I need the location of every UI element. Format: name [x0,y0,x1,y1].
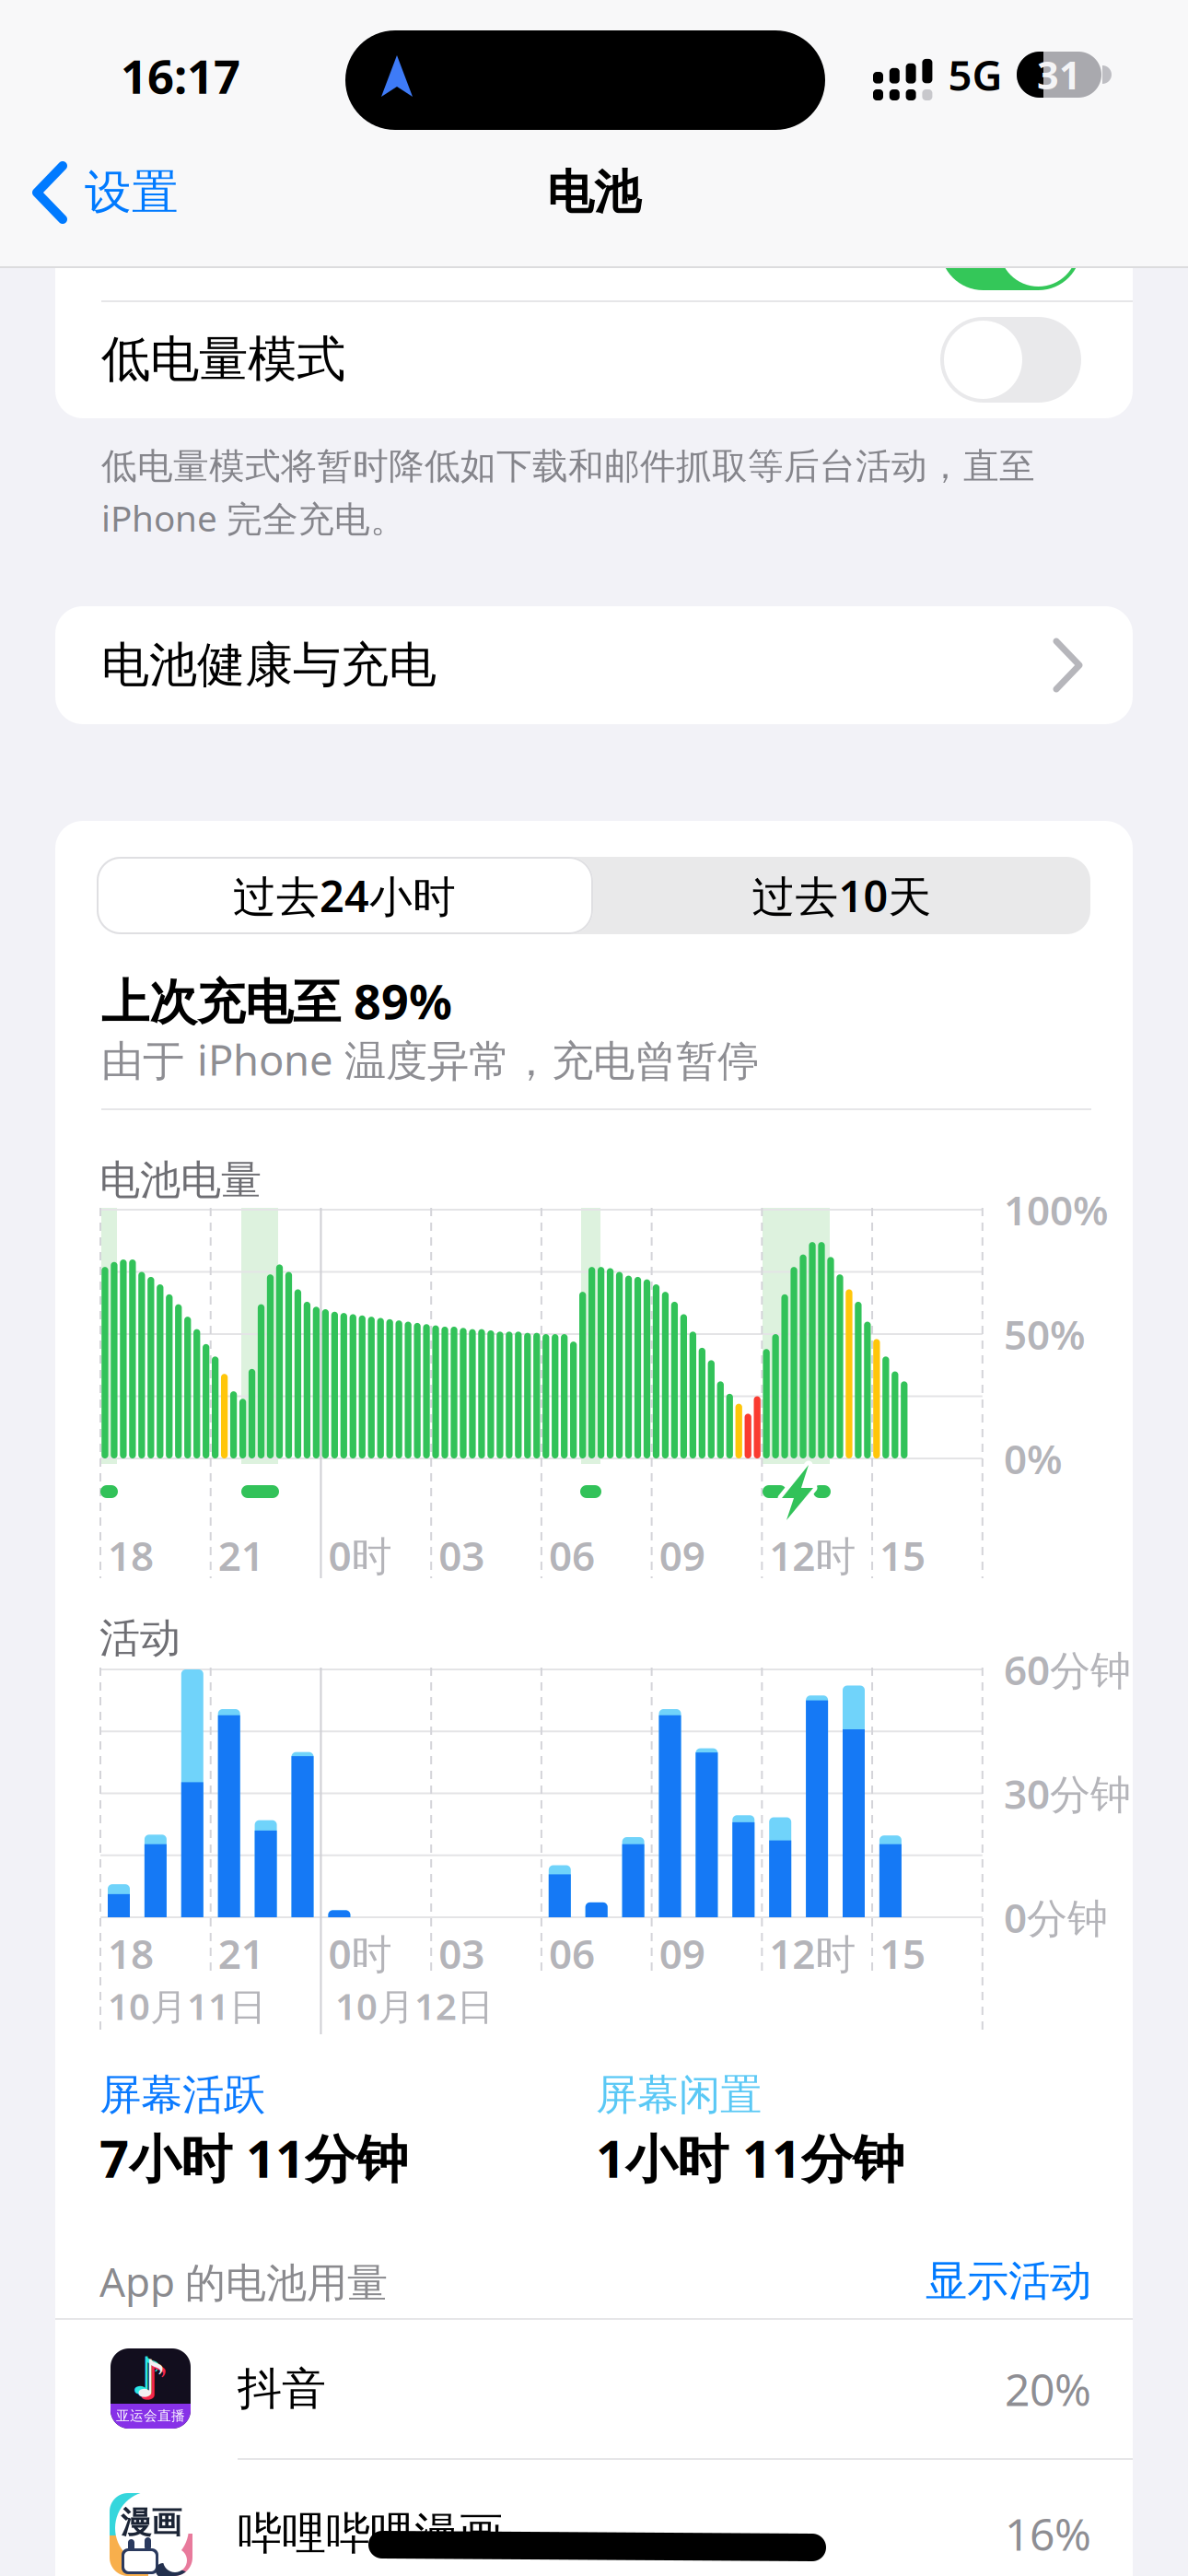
staticText: 60分钟 [1004,1643,1131,1696]
staticText: 21 [218,1926,264,1980]
staticText: ♪ [137,2352,170,2411]
staticText: 03 [439,1528,485,1582]
staticText: 06 [549,1528,595,1582]
staticText: iPhone 完全充电。 [101,494,406,541]
staticText: 16:17 [121,45,240,107]
staticText: 0时 [328,1528,392,1582]
button[interactable]: 显示活动 [0,0,460,68]
staticText: 抖音 [238,2362,326,2416]
staticText: 06 [549,1926,595,1980]
staticText: ♪ [130,2347,163,2405]
button[interactable]: 过去24小时 [97,857,593,934]
staticText: 5G [948,47,1002,102]
button[interactable]: 返回设置 [33,161,245,224]
staticText: 09 [659,1926,705,1980]
staticText: 0% [1004,1432,1063,1485]
button[interactable]: 过去10天 [593,857,1090,934]
staticText: 漫画 [121,2504,181,2541]
staticText: 屏幕活跃 [99,2069,265,2121]
staticText: 活动 [99,1613,181,1663]
staticText: 21 [218,1528,264,1582]
staticText: 09 [659,1528,705,1582]
staticText: 0分钟 [1004,1890,1108,1944]
staticText: 20% [1005,2360,1091,2418]
staticText: 1小时 11分钟 [596,2123,904,2192]
staticText: 屏幕闲置 [596,2069,762,2121]
staticText: 0时 [328,1926,392,1980]
staticText: 100% [1004,1183,1109,1237]
staticText: 电池健康与充电 [101,636,437,695]
staticText: 15 [880,1528,926,1582]
staticText: 上次充电至 89% [101,969,452,1032]
button[interactable]: 电池健康与充电 [55,606,1133,724]
staticText: 12时 [769,1528,856,1582]
staticText: 50% [1004,1307,1086,1361]
button[interactable]: 电池百分比 [940,205,1081,290]
button[interactable]: 低电量模式 [55,302,1133,418]
staticText: 低电量模式 [101,329,345,389]
staticText: 15 [880,1926,926,1980]
staticText: 10月11日 [108,1981,266,2030]
staticText: 31 [1037,49,1081,100]
button[interactable]: 漫画 [55,2460,1133,2576]
staticText: 03 [439,1926,485,1980]
staticText: 7小时 11分钟 [99,2123,408,2192]
staticText: 低电量模式将暂时降低如下载和邮件抓取等后台活动，直至 [101,444,1035,488]
staticText: 亚运会直播 [116,2407,185,2424]
staticText: 16% [1005,2504,1091,2563]
staticText: 由于 iPhone 温度异常，充电曾暂停 [101,1032,759,1087]
staticText: 电池 [547,164,641,221]
staticText: 30分钟 [1004,1766,1131,1820]
staticText: 过去10天 [752,867,932,924]
staticText: 电池电量 [99,1155,262,1205]
staticText: 18 [108,1528,154,1582]
staticText: 过去24小时 [233,867,456,924]
button[interactable]: ♪ [55,2320,1133,2458]
staticText: App 的电池用量 [99,2254,388,2308]
staticText: 18 [108,1926,154,1980]
staticText: ♪ [134,2350,167,2408]
staticText: 哔哩哔哩漫画 [238,2506,503,2561]
staticText: 12时 [769,1926,856,1980]
staticText: 设置 [85,164,179,221]
staticText: 显示活动 [926,2256,1091,2307]
staticText: 10月12日 [335,1981,494,2030]
